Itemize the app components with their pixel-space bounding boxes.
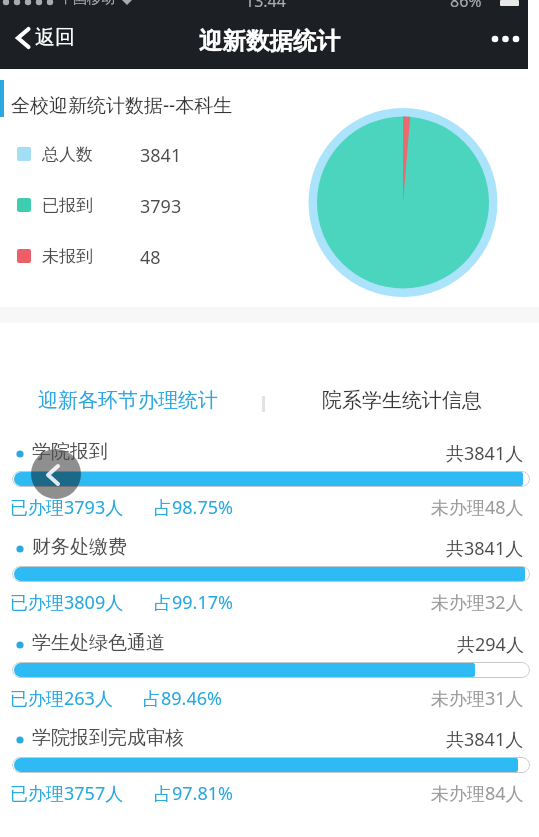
staticText: 占97.81% <box>154 781 233 806</box>
button[interactable]: 院系学生统计信息 <box>290 385 520 425</box>
staticText: 3793 <box>140 194 182 219</box>
button[interactable]: 共3841人 <box>0 440 539 465</box>
staticText: 已办理263人 <box>10 686 113 711</box>
staticText: 学院报到完成审核 <box>32 726 184 750</box>
staticText: 已报到 <box>42 195 93 216</box>
staticText: 学生处绿色通道 <box>32 631 165 655</box>
staticText: 未办理31人 <box>431 686 524 711</box>
button[interactable]: 财务处缴费 <box>0 535 539 560</box>
staticText: 占98.75% <box>154 495 233 520</box>
staticText: 已办理3757人 <box>10 781 124 806</box>
staticText: 未办理32人 <box>431 590 524 615</box>
staticText: 3841 <box>140 143 182 168</box>
staticText: 总人数 <box>42 144 93 165</box>
staticText: 共3841人 <box>446 441 524 466</box>
staticText: 财务处缴费 <box>32 535 127 559</box>
staticText: 未报到 <box>42 246 93 267</box>
staticText: 未办理48人 <box>431 495 524 520</box>
staticText: 院系学生统计信息 <box>322 388 482 413</box>
staticText: 中国移动 <box>59 0 115 8</box>
staticText: 全校迎新统计数据--本科生 <box>11 92 233 118</box>
staticText: 未办理84人 <box>431 781 524 806</box>
button[interactable]: 返回 <box>0 14 100 68</box>
button[interactable]: 学院报到完成审核 <box>0 726 539 751</box>
staticText: 共3841人 <box>446 727 524 752</box>
staticText: 共3841人 <box>446 536 524 561</box>
staticText: 已办理3793人 <box>10 495 124 520</box>
staticText: 13:44 <box>245 0 286 12</box>
staticText: 返回 <box>35 25 75 50</box>
button[interactable] <box>480 20 528 60</box>
staticText: 学院报到 <box>32 440 108 464</box>
button[interactable]: 学生处绿色通道 <box>0 631 539 656</box>
staticText: 已办理3809人 <box>10 590 124 615</box>
button[interactable]: 迎新各环节办理统计 <box>10 385 260 425</box>
button[interactable] <box>31 449 81 499</box>
staticText: 占89.46% <box>143 686 222 711</box>
staticText: 迎新数据统计 <box>199 26 340 56</box>
staticText: 占99.17% <box>154 590 233 615</box>
staticText: 共294人 <box>457 632 524 657</box>
staticText: 86% <box>450 0 482 12</box>
staticText: 48 <box>140 245 161 270</box>
staticText: 迎新各环节办理统计 <box>38 388 218 413</box>
